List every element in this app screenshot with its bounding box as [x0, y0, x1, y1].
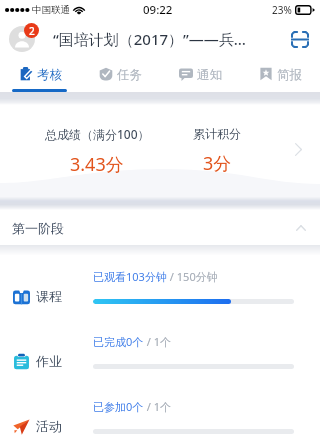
staticText: 累计积分: [193, 126, 241, 141]
staticText: 23%: [272, 3, 292, 17]
staticText: 已参加0个: [93, 399, 144, 414]
staticText: 考核: [37, 67, 62, 83]
staticText: 中国联通: [32, 4, 70, 16]
staticText: 作业: [36, 353, 62, 369]
staticText: 通知: [197, 67, 222, 83]
staticText: “国培计划（2017）”——兵…: [53, 29, 282, 49]
staticText: / 1个: [144, 399, 172, 414]
staticText: 第一阶段: [12, 220, 64, 236]
button[interactable]: 第一阶段: [0, 210, 320, 245]
button[interactable]: 简报: [240, 57, 320, 92]
button[interactable]: 作业: [0, 320, 320, 385]
staticText: 09:22: [143, 2, 173, 18]
button[interactable]: 通知: [160, 57, 240, 92]
staticText: 3分: [203, 151, 232, 176]
staticText: / 1个: [144, 334, 172, 349]
button[interactable]: 累计积分: [159, 105, 275, 197]
button[interactable]: 总成绩（满分100）: [35, 105, 159, 197]
staticText: / 150分钟: [167, 269, 218, 284]
button[interactable]: 扫一扫: [286, 25, 314, 53]
staticText: 简报: [277, 67, 302, 83]
button[interactable]: 活动: [0, 385, 320, 444]
staticText: 课程: [36, 288, 62, 304]
button[interactable]: 任务: [80, 57, 160, 92]
button[interactable]: 个人中心: [6, 22, 40, 56]
staticText: 已完成0个: [93, 334, 144, 349]
button[interactable]: 考核: [0, 57, 80, 92]
staticText: 总成绩（满分100）: [45, 126, 150, 142]
staticText: 3.43分: [70, 152, 124, 177]
staticText: 2: [29, 24, 35, 38]
button[interactable]: 课程: [0, 255, 320, 320]
staticText: 任务: [117, 67, 142, 83]
staticText: 已观看103分钟: [93, 269, 167, 284]
staticText: 活动: [36, 418, 62, 434]
